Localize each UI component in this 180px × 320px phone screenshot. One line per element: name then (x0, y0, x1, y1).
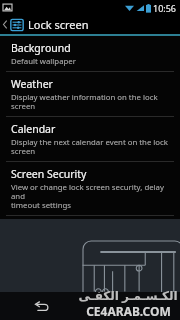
button[interactable]: Calendar (0, 117, 180, 161)
staticText: Screen Security (11, 167, 87, 181)
button[interactable]: Up, Lock screen (0, 15, 180, 34)
staticText: Calendar (11, 122, 56, 136)
button[interactable]: Slider shortcuts (0, 216, 180, 260)
staticText: 10:56 (153, 2, 177, 14)
staticText: Display the next calendar event on the l… (11, 137, 168, 157)
button[interactable]: Background (0, 36, 180, 71)
button[interactable]: Screen Security (0, 162, 180, 215)
staticText: الكـسـمـر الكفـى (78, 287, 178, 303)
staticText: Lock screen (28, 17, 89, 32)
button[interactable]: Weather (0, 72, 180, 116)
staticText: Default wallpaper (11, 56, 76, 67)
staticText: View or change custom lock screen shortc… (11, 236, 172, 256)
button[interactable]: Back (30, 295, 52, 317)
staticText: Background (11, 41, 71, 55)
staticText: Display weather information on the lock … (11, 92, 172, 112)
staticText: View or change lock screen security, del… (11, 182, 172, 211)
staticText: Weather (11, 77, 53, 91)
staticText: CE4ARAB.COM (86, 303, 171, 319)
